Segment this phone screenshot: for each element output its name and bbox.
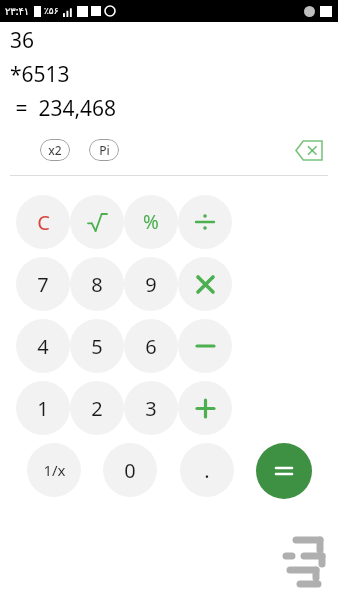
button[interactable]: Equals	[256, 443, 312, 499]
button[interactable]: Divide	[178, 195, 232, 249]
button[interactable]: 3	[124, 381, 178, 435]
button[interactable]: 8	[70, 257, 124, 311]
staticText: = 234,468	[10, 94, 117, 123]
staticText: %	[143, 209, 159, 235]
staticText: .	[204, 457, 210, 484]
staticText: ٪۵۶	[44, 6, 59, 16]
button[interactable]: 5	[70, 319, 124, 373]
staticText: 3	[145, 395, 157, 422]
button[interactable]: 7	[16, 257, 70, 311]
button[interactable]: %	[124, 195, 178, 249]
button[interactable]: Square root	[70, 195, 124, 249]
button[interactable]: Pi	[89, 139, 119, 161]
button[interactable]: 2	[70, 381, 124, 435]
staticText: 36	[10, 26, 35, 55]
button[interactable]: Multiply	[178, 257, 232, 311]
staticText: 2	[91, 395, 103, 422]
button[interactable]: Plus	[178, 381, 232, 435]
staticText: 1/x	[43, 460, 66, 480]
button[interactable]: Minus	[178, 319, 232, 373]
staticText: C	[37, 209, 50, 236]
staticText: 6	[145, 333, 157, 360]
button[interactable]: .	[180, 443, 234, 497]
staticText: 1	[37, 395, 49, 422]
staticText: 0	[124, 457, 136, 484]
button[interactable]: 9	[124, 257, 178, 311]
button[interactable]: 1/x	[27, 443, 81, 497]
staticText: Pi	[99, 142, 110, 158]
staticText: 9	[145, 271, 157, 298]
button[interactable]: Backspace	[294, 138, 324, 162]
button[interactable]: 6	[124, 319, 178, 373]
button[interactable]: x2	[40, 139, 70, 161]
staticText: 4	[37, 333, 49, 360]
button[interactable]: 1	[16, 381, 70, 435]
button[interactable]: C	[16, 195, 70, 249]
staticText: 5	[91, 333, 103, 360]
staticText: ۲۳:۴۱	[5, 4, 30, 18]
staticText: *6513	[10, 60, 70, 89]
button[interactable]: 0	[103, 443, 157, 497]
staticText: 8	[91, 271, 103, 298]
button[interactable]: 4	[16, 319, 70, 373]
staticText: 7	[37, 271, 49, 298]
staticText: x2	[48, 142, 62, 158]
